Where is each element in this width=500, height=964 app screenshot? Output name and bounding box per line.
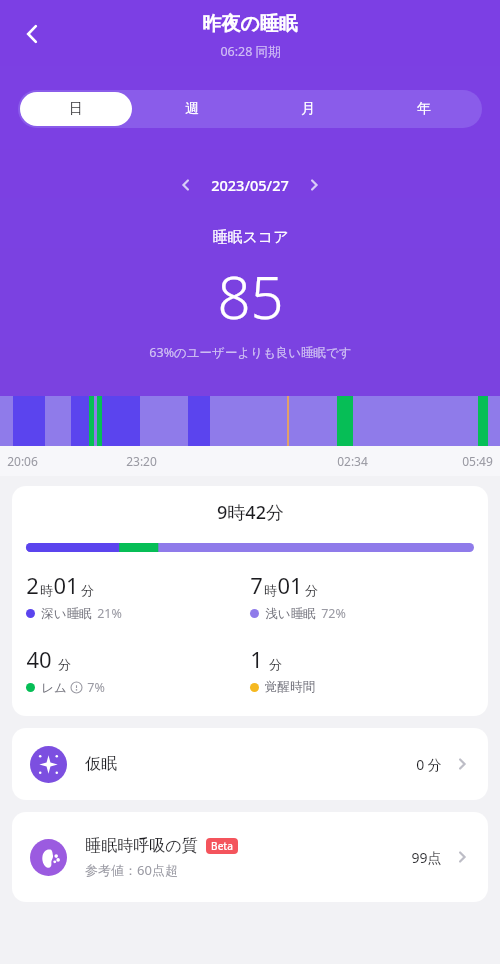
staticText: 05:49 — [462, 453, 493, 469]
staticText: 分 — [58, 656, 71, 672]
button[interactable]: 2023/05/27 — [207, 173, 293, 197]
button[interactable]: 週 — [136, 92, 248, 126]
staticText: 21% — [97, 605, 122, 622]
staticText: 週 — [185, 100, 199, 118]
staticText: 7% — [87, 679, 105, 696]
staticText: 0 分 — [416, 755, 442, 774]
other: Info — [71, 682, 82, 693]
staticText: Beta — [211, 839, 233, 853]
staticText: 分 — [269, 656, 282, 672]
button[interactable]: 仮眠 — [12, 728, 488, 800]
staticText: 覚醒時間 — [265, 679, 315, 695]
staticText: 2023/05/27 — [211, 175, 289, 195]
staticText: 23:20 — [126, 453, 157, 469]
staticText: 時 — [40, 582, 53, 598]
button[interactable]: Next day — [297, 168, 331, 202]
staticText: 02:34 — [337, 453, 368, 469]
staticText: 40 — [26, 644, 52, 674]
staticText: 日 — [69, 100, 83, 118]
button[interactable]: 月 — [252, 92, 364, 126]
staticText: 時 — [264, 582, 277, 598]
staticText: 2 — [26, 570, 39, 600]
staticText: レム — [41, 680, 67, 696]
staticText: 昨夜の睡眠 — [202, 12, 298, 36]
button[interactable]: 日 — [20, 92, 132, 126]
staticText: 分 — [81, 582, 94, 598]
staticText: 分 — [305, 582, 318, 598]
button[interactable]: 9時42分 — [12, 486, 488, 716]
staticText: 年 — [417, 100, 431, 118]
staticText: 01 — [277, 570, 303, 600]
staticText: 深い睡眠 — [41, 606, 92, 622]
button[interactable]: Back — [8, 10, 56, 58]
staticText: 20:06 — [7, 453, 38, 469]
button[interactable]: Previous day — [169, 168, 203, 202]
staticText: 72% — [321, 605, 346, 622]
button[interactable]: 睡眠時呼吸の質 — [12, 812, 488, 902]
staticText: 睡眠時呼吸の質 — [85, 836, 198, 856]
staticText: 浅い睡眠 — [265, 606, 316, 622]
staticText: 1 — [250, 644, 263, 674]
staticText: 63%のユーザーよりも良い睡眠です — [149, 344, 352, 361]
button[interactable]: 年 — [368, 92, 480, 126]
staticText: 06:28 同期 — [220, 43, 281, 60]
staticText: 睡眠スコア — [212, 228, 289, 247]
staticText: 月 — [301, 100, 315, 118]
staticText: 99点 — [411, 848, 442, 867]
staticText: 仮眠 — [85, 754, 117, 774]
staticText: 85 — [217, 257, 284, 336]
staticText: 7 — [250, 570, 263, 600]
staticText: 参考値：60点超 — [85, 861, 178, 879]
staticText: 9時42分 — [217, 500, 284, 525]
staticText: 01 — [53, 570, 79, 600]
